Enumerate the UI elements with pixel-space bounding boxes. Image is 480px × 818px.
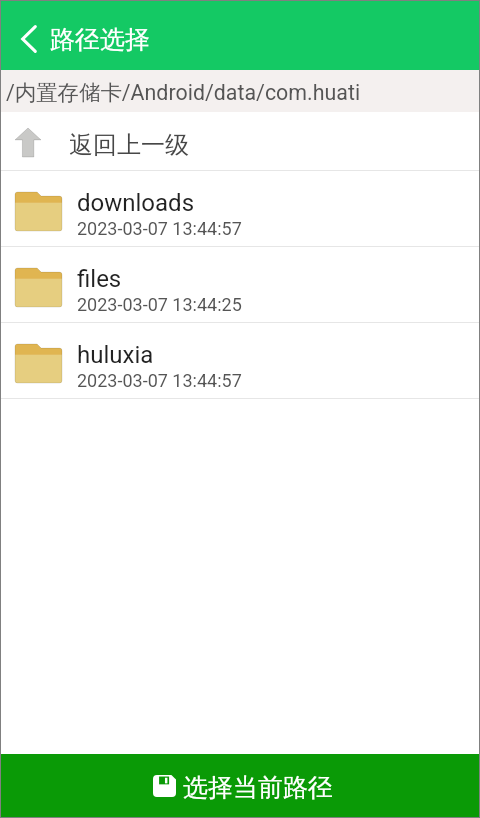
staticText: 2023-03-07 13:44:57	[77, 218, 242, 239]
staticText: 2023-03-07 13:44:25	[77, 294, 242, 315]
staticText: huluxia	[77, 341, 154, 369]
staticText: 返回上一级	[69, 130, 189, 160]
button[interactable]: Back	[1, 1, 57, 70]
button[interactable]: huluxia	[1, 323, 479, 398]
button[interactable]: 选择当前路径	[1, 754, 479, 817]
button[interactable]: files	[1, 247, 479, 322]
staticText: files	[77, 265, 122, 293]
staticText: 选择当前路径	[183, 772, 333, 803]
button[interactable]: 返回上一级	[1, 112, 479, 170]
staticText: 2023-03-07 13:44:57	[77, 370, 242, 391]
button[interactable]: downloads	[1, 171, 479, 246]
staticText: downloads	[77, 189, 195, 217]
staticText: 路径选择	[50, 24, 150, 55]
staticText: /内置存储卡/Android/data/com.huati	[6, 79, 361, 106]
